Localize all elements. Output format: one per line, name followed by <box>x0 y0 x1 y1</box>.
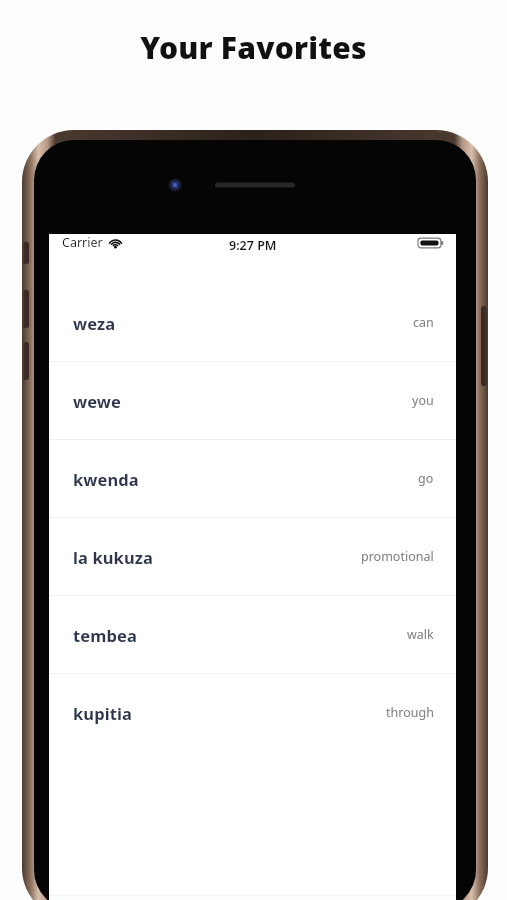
staticText: go <box>418 470 434 487</box>
staticText: la kukuza <box>73 546 153 568</box>
staticText: 9:27 PM <box>229 237 277 254</box>
staticText: you <box>412 392 434 409</box>
button[interactable]: la kukuza <box>49 518 456 595</box>
button[interactable]: tembea <box>49 596 456 673</box>
button[interactable]: weza <box>49 284 456 361</box>
staticText: walk <box>407 626 434 643</box>
button[interactable]: wewe <box>49 362 456 439</box>
staticText: wewe <box>73 390 122 412</box>
staticText: Carrier <box>62 234 103 251</box>
staticText: promotional <box>361 548 434 565</box>
staticText: can <box>413 314 434 331</box>
staticText: weza <box>73 312 116 334</box>
button[interactable]: kwenda <box>49 440 456 517</box>
staticText: tembea <box>73 624 137 646</box>
staticText: through <box>386 704 434 721</box>
staticText: Your Favorites <box>140 27 367 68</box>
staticText: kwenda <box>73 468 139 490</box>
button[interactable]: kupitia <box>49 674 456 751</box>
staticText: kupitia <box>73 702 132 724</box>
